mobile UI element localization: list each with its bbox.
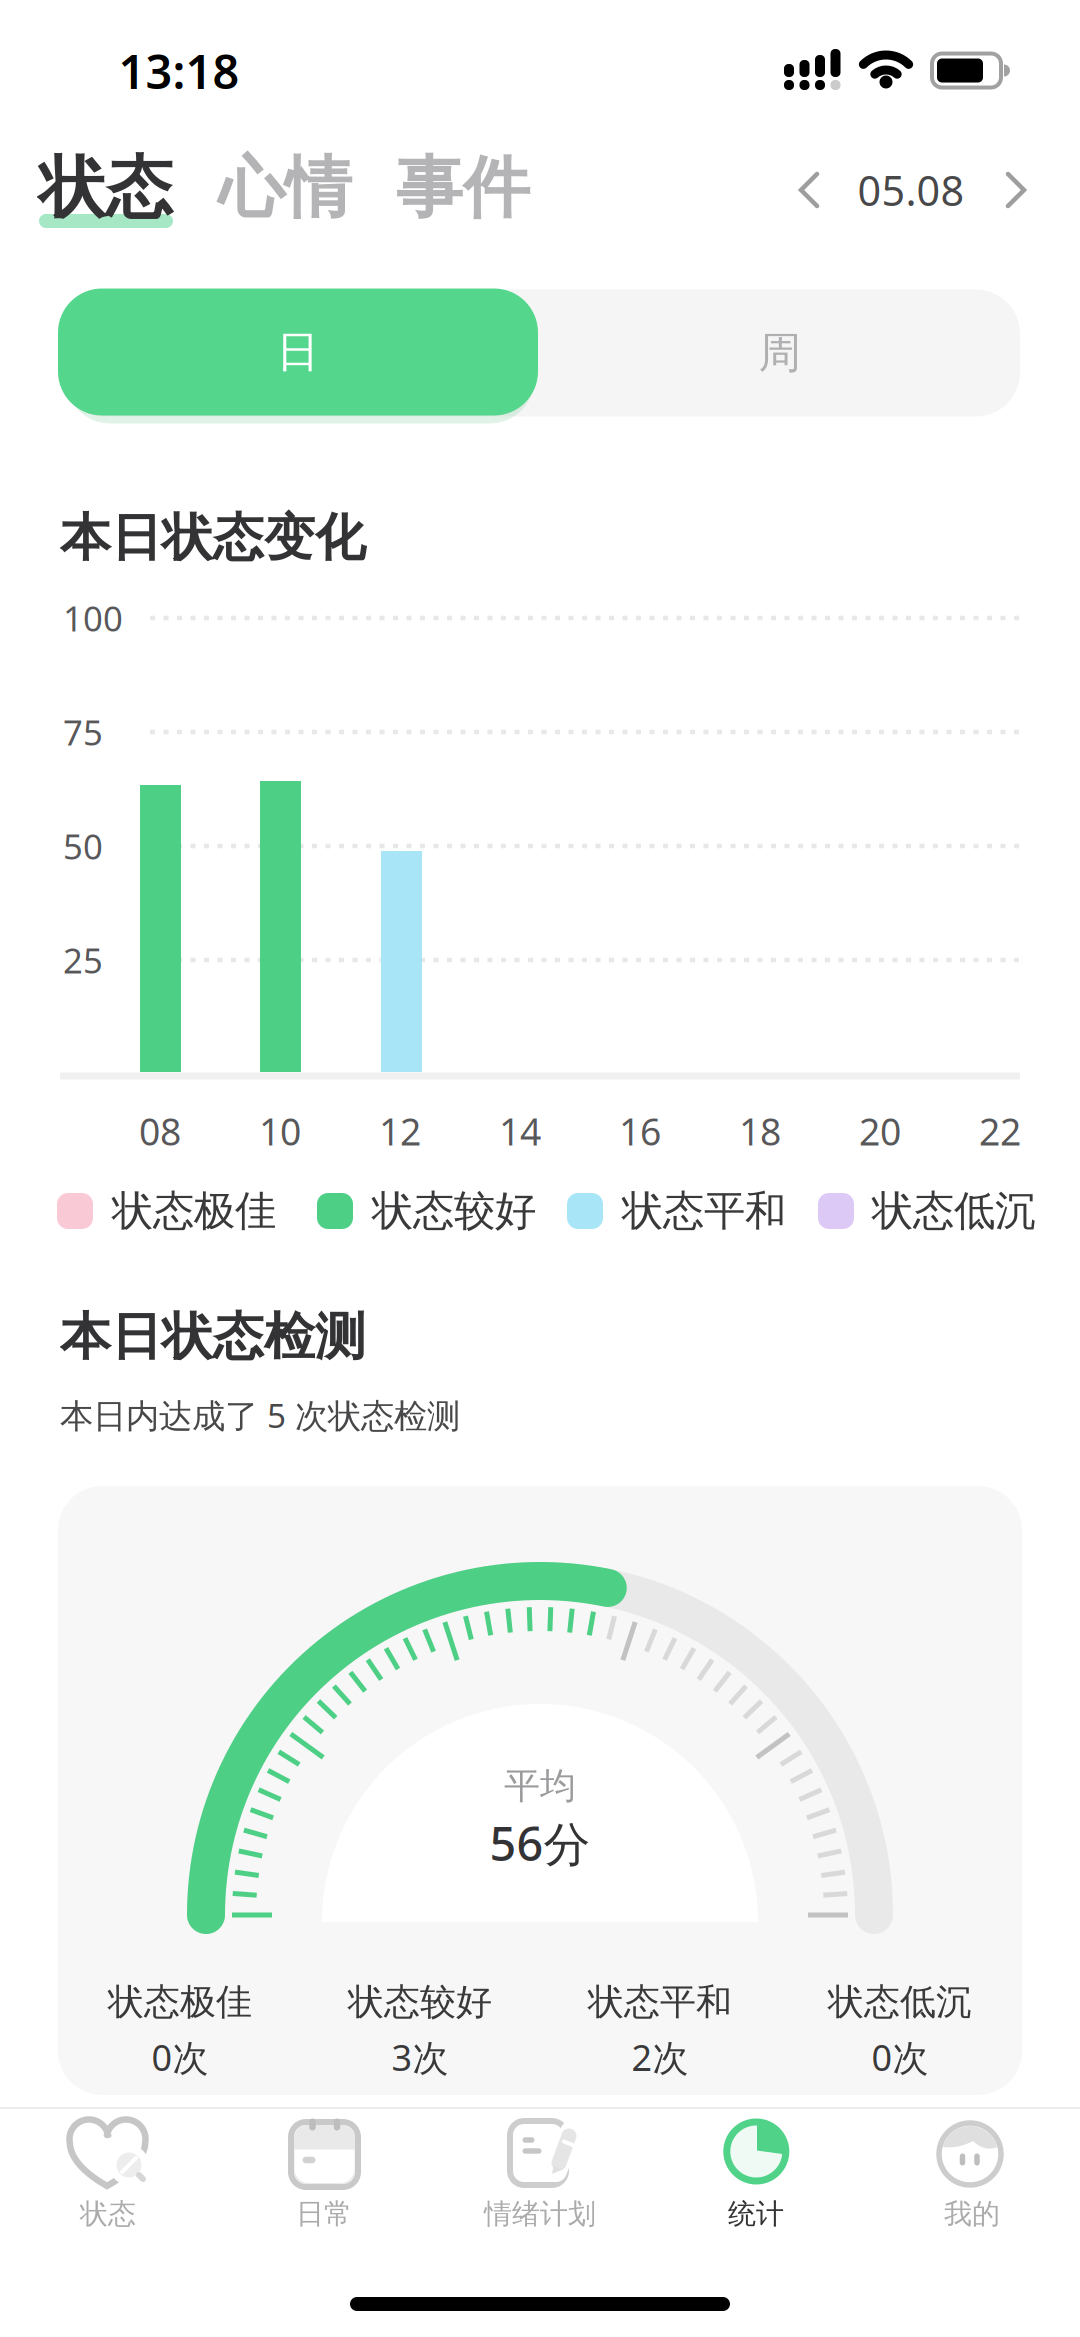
button[interactable]: Previous day [784, 160, 834, 220]
staticText: 本日内达成了 5 次状态检测 [60, 1393, 460, 1437]
button[interactable]: 周 [540, 289, 1020, 416]
staticText: 状态极佳 [112, 1186, 276, 1236]
button[interactable]: 日常 [216, 2105, 432, 2255]
staticText: 本日状态检测 [60, 1306, 366, 1368]
staticText: 56分 [489, 1812, 590, 1874]
staticText: 事件 [396, 147, 530, 229]
staticText: 日 [276, 326, 319, 378]
staticText: 18 [739, 1106, 781, 1156]
staticText: 日常 [296, 2197, 352, 2231]
staticText: 22 [979, 1106, 1021, 1156]
button[interactable]: 日 [58, 288, 538, 415]
staticText: 我的 [944, 2197, 1000, 2231]
staticText: 状态 [80, 2197, 136, 2231]
staticText: 状态平和 [622, 1186, 786, 1236]
staticText: 13:18 [118, 40, 239, 102]
staticText: 统计 [728, 2197, 784, 2231]
staticText: 状态较好 [348, 1980, 492, 2024]
button[interactable]: 状态 [0, 2105, 216, 2255]
staticText: 状态极佳 [108, 1980, 252, 2024]
staticText: 100 [63, 595, 123, 641]
staticText: 状态平和 [588, 1980, 732, 2024]
staticText: 情绪计划 [484, 2197, 596, 2231]
staticText: 状态低沉 [872, 1186, 1036, 1236]
button[interactable]: 事件 [396, 147, 530, 229]
staticText: 0次 [871, 2033, 928, 2081]
button[interactable]: 心情 [218, 147, 352, 229]
staticText: 本日状态变化 [60, 507, 366, 569]
staticText: 12 [379, 1106, 421, 1156]
button[interactable]: Next day [991, 160, 1041, 220]
staticText: 50 [63, 823, 103, 869]
staticText: 0次 [151, 2033, 208, 2081]
staticText: 心情 [218, 147, 352, 229]
staticText: 25 [63, 937, 103, 983]
staticText: 状态较好 [372, 1186, 536, 1236]
button[interactable]: 我的 [864, 2105, 1080, 2255]
staticText: 10 [259, 1106, 301, 1156]
staticText: 周 [758, 327, 801, 379]
staticText: 状态 [39, 147, 173, 229]
button[interactable]: 状态 [39, 147, 173, 229]
staticText: 20 [859, 1106, 901, 1156]
staticText: 14 [499, 1106, 541, 1156]
staticText: 2次 [631, 2033, 688, 2081]
staticText: 75 [63, 709, 103, 755]
staticText: 16 [619, 1106, 661, 1156]
button[interactable]: 情绪计划 [432, 2105, 648, 2255]
staticText: 3次 [391, 2033, 448, 2081]
staticText: 平均 [504, 1764, 576, 1808]
staticText: 状态低沉 [828, 1980, 972, 2024]
staticText: 08 [139, 1106, 181, 1156]
staticText: 05.08 [857, 163, 964, 217]
button[interactable]: 统计 [648, 2105, 864, 2255]
